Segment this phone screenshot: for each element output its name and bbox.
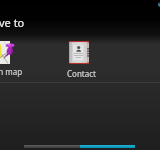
- staticText: On map: [0, 66, 23, 77]
- staticText: ve to: [0, 15, 25, 30]
- staticText: Contact: [67, 68, 96, 79]
- button[interactable]: Contact: [58, 41, 104, 77]
- button[interactable]: On map: [0, 41, 30, 77]
